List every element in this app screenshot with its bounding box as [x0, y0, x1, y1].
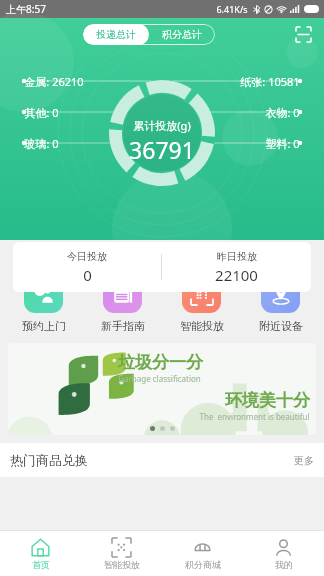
staticText: 新手指南: [101, 319, 145, 333]
staticText: 预约上门: [22, 319, 66, 333]
staticText: 投递总计: [96, 28, 136, 41]
button[interactable]: 附近设备: [241, 274, 320, 333]
staticText: 附近设备: [259, 319, 303, 333]
staticText: 环境美十分: [225, 390, 310, 411]
staticText: 其他: 0: [24, 105, 59, 120]
staticText: 智能投放: [180, 319, 224, 333]
staticText: 0: [83, 265, 92, 285]
staticText: 我的: [275, 559, 293, 570]
button[interactable]: 垃圾分一分: [8, 343, 316, 435]
button[interactable]: 昨日投放: [162, 250, 311, 285]
staticText: 金属: 26210: [24, 74, 84, 89]
button[interactable]: 今日投放: [13, 250, 161, 285]
button[interactable]: 扫一扫: [290, 21, 316, 47]
staticText: 累计投放(g): [133, 118, 191, 133]
button[interactable]: 首页: [0, 531, 81, 576]
staticText: 上午8:57: [6, 2, 46, 16]
staticText: 更多: [294, 454, 314, 467]
staticText: 纸张: 10581: [240, 74, 300, 89]
staticText: 首页: [32, 559, 50, 570]
staticText: 36791: [129, 134, 195, 165]
button[interactable]: 新手指南: [83, 274, 162, 333]
staticText: 热门商品兑换: [10, 452, 88, 468]
staticText: 22100: [215, 265, 258, 285]
button[interactable]: 智能投放: [81, 531, 162, 576]
button[interactable]: 预约上门: [4, 274, 83, 333]
button[interactable]: 我的: [243, 531, 324, 576]
staticText: 玻璃: 0: [24, 136, 59, 151]
staticText: 积分商城: [185, 559, 221, 570]
staticText: Garbage classification: [118, 373, 201, 384]
button[interactable]: 积分总计: [149, 24, 215, 45]
button[interactable]: 积分商城: [162, 531, 243, 576]
staticText: 智能投放: [104, 559, 140, 570]
staticText: 垃圾分一分: [118, 352, 203, 373]
staticText: 6.41K/s: [216, 3, 248, 15]
staticText: 昨日投放: [217, 250, 257, 263]
button[interactable]: 更多: [294, 454, 314, 467]
button[interactable]: 智能投放: [162, 274, 241, 333]
staticText: 积分总计: [162, 28, 202, 41]
staticText: 衣物: 0: [265, 105, 300, 120]
button[interactable]: 投递总计: [83, 24, 149, 45]
staticText: 塑料: 0: [265, 136, 300, 151]
staticText: The environment is beautiful: [199, 411, 310, 422]
staticText: 今日投放: [67, 250, 107, 263]
